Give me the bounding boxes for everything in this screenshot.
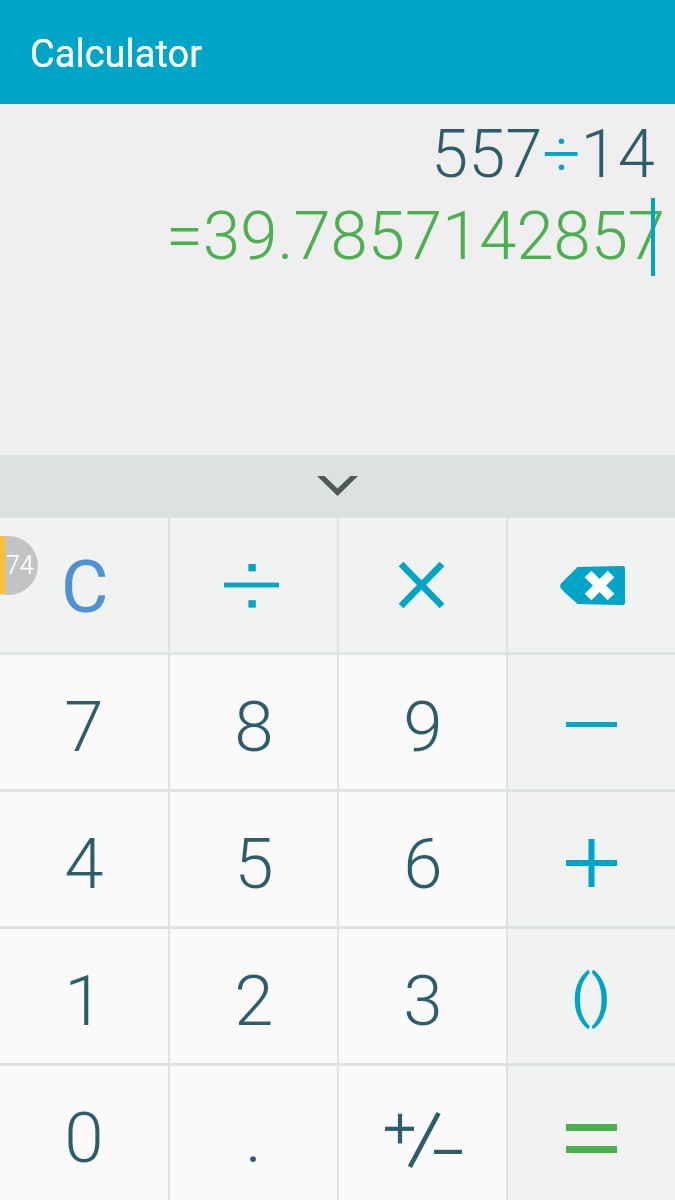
staticText: 5 (234, 822, 274, 905)
button[interactable]: Collapse keypad (0, 455, 675, 518)
staticText: 3 (403, 959, 443, 1042)
button[interactable]: Clear (0, 518, 168, 652)
staticText: 4 (64, 822, 104, 905)
staticText: 2 (234, 959, 274, 1042)
button[interactable]: 8 (170, 655, 337, 789)
button[interactable]: 5 (170, 792, 337, 926)
button[interactable]: 9 (339, 655, 506, 789)
button[interactable]: 7 (0, 655, 168, 789)
button[interactable] (339, 1066, 506, 1200)
button[interactable]: Backspace (508, 518, 675, 652)
button[interactable]: Divide (170, 518, 337, 652)
button[interactable]: 6 (339, 792, 506, 926)
button[interactable]: . (170, 1066, 337, 1200)
button[interactable]: Parentheses (508, 929, 675, 1063)
staticText: () (571, 962, 612, 1030)
button[interactable]: Multiply (339, 518, 506, 652)
button[interactable]: 2 (170, 929, 337, 1063)
button[interactable]: 4 (0, 792, 168, 926)
button[interactable]: Equals (508, 1066, 675, 1200)
staticText: Calculator (30, 32, 203, 77)
button[interactable]: 3 (339, 929, 506, 1063)
staticText: 0 (64, 1096, 104, 1179)
staticText: 6 (403, 822, 443, 905)
staticText: 557÷14 (431, 115, 655, 194)
staticText: =39.7857142857 (166, 197, 666, 276)
button[interactable]: Plus (508, 792, 675, 926)
button[interactable]: 1 (0, 929, 168, 1063)
button[interactable]: Minus (508, 655, 675, 789)
staticText: 1 (64, 959, 104, 1042)
staticText: 7 (64, 685, 104, 768)
staticText: 74 (6, 551, 34, 580)
staticText: . (245, 1096, 262, 1179)
staticText: 8 (234, 685, 274, 768)
button[interactable]: 0 (0, 1066, 168, 1200)
staticText: C (61, 544, 109, 630)
staticText: 9 (403, 685, 443, 768)
